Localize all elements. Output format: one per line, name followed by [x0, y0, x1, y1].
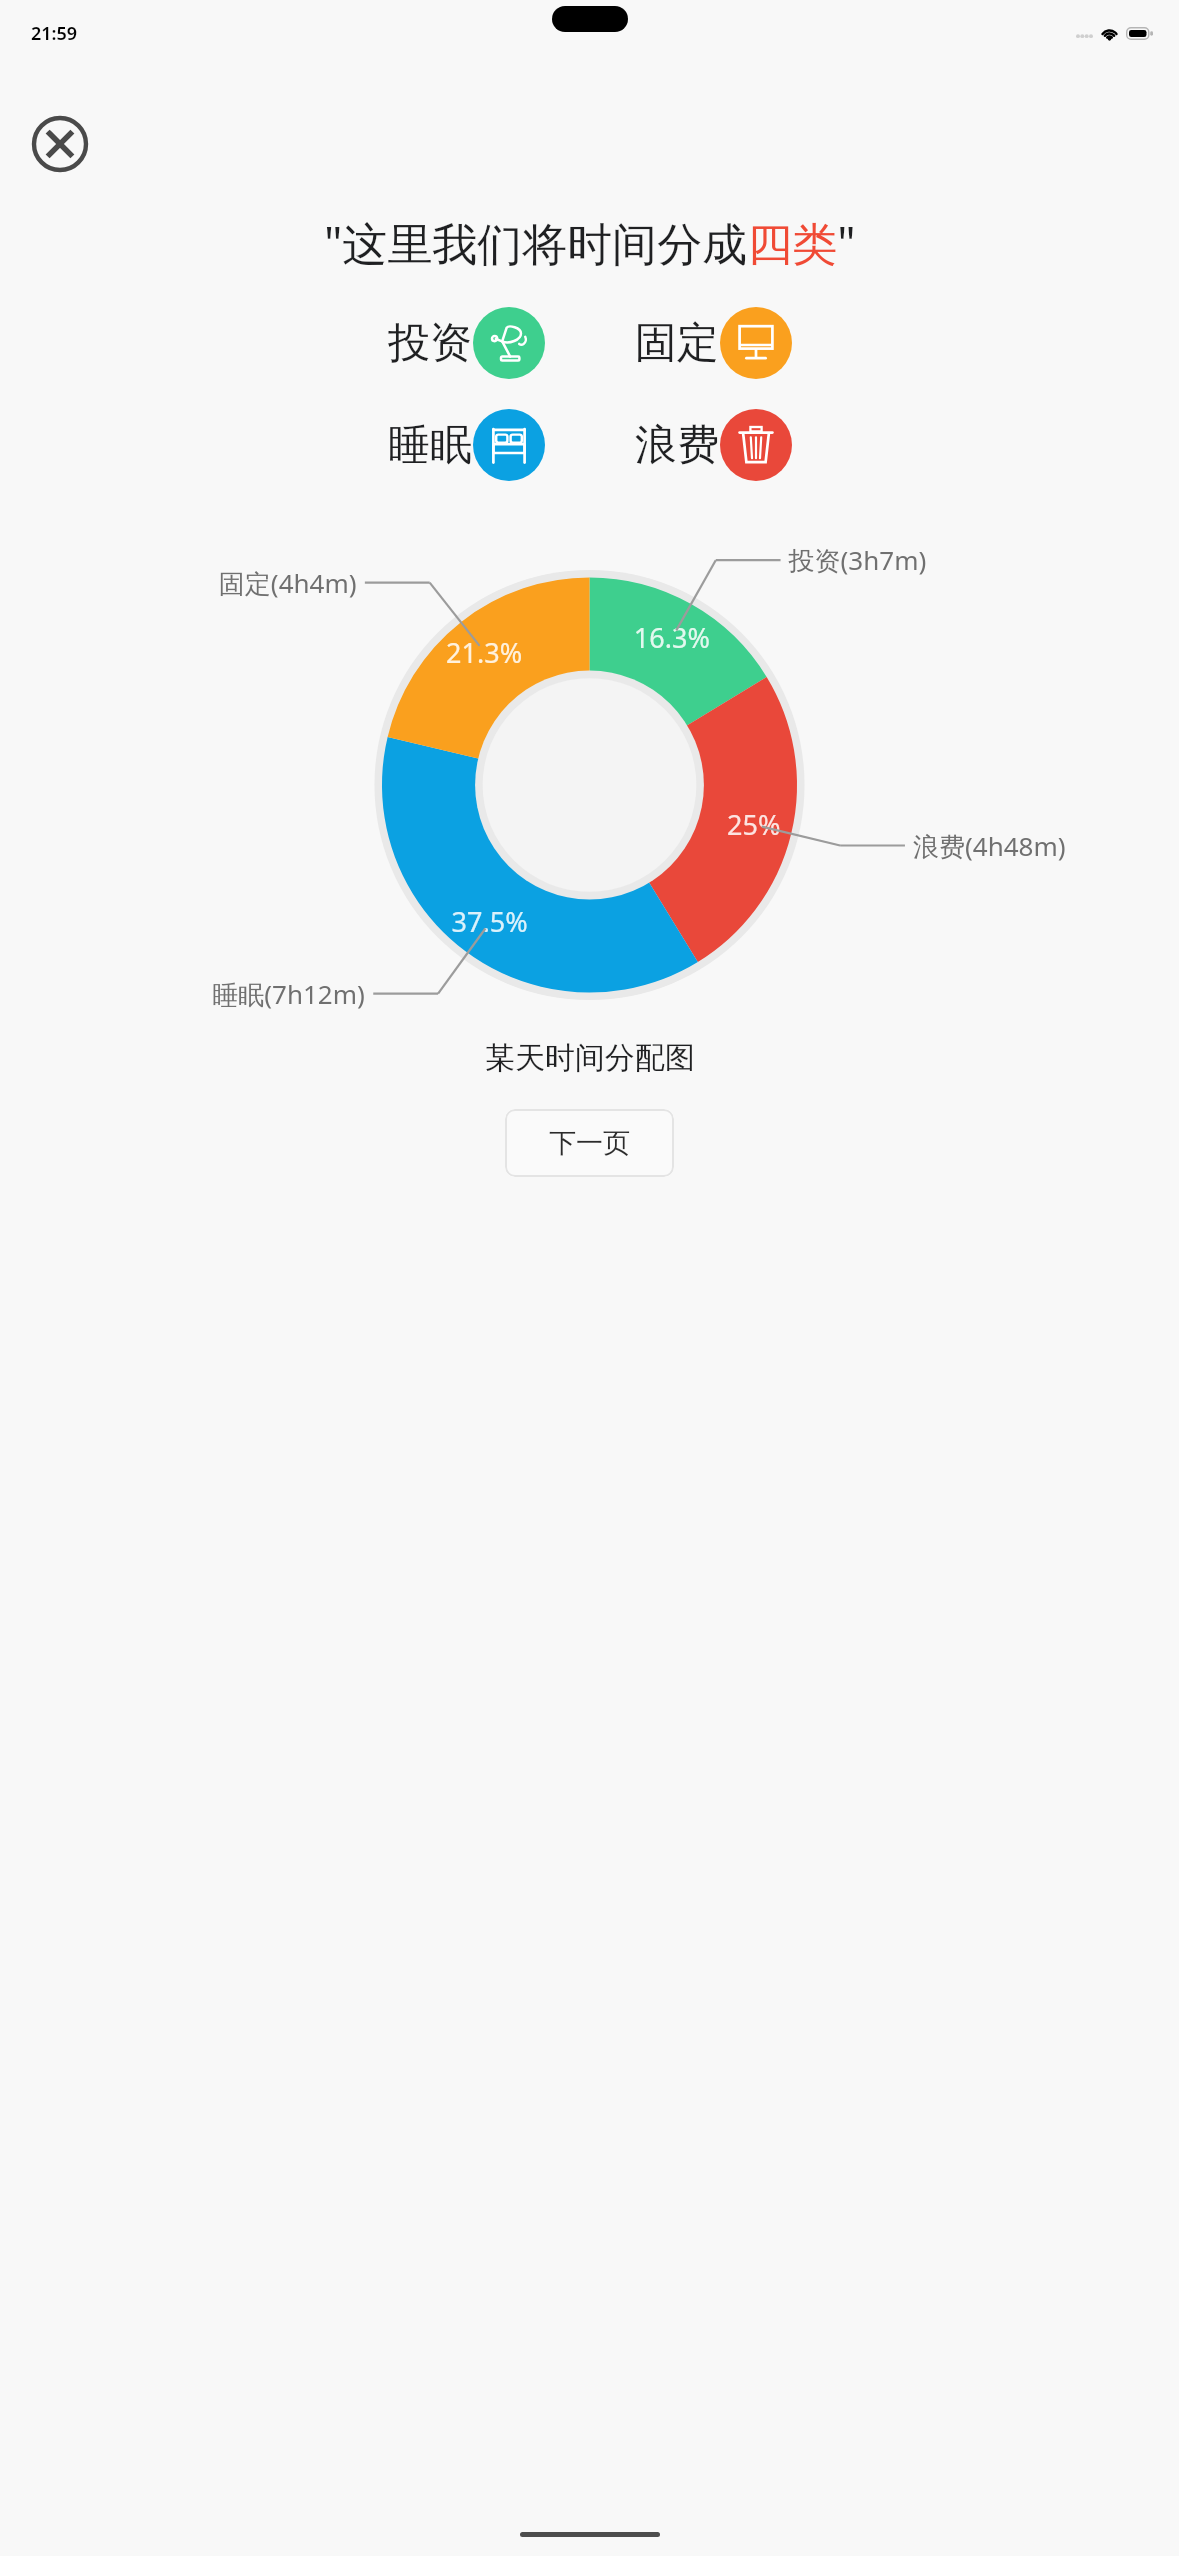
staticText: 投资 [388, 317, 472, 370]
staticText: 某天时间分配图 [485, 1039, 695, 1077]
staticText: 21:59 [31, 21, 78, 46]
button[interactable]: 浪费 [635, 405, 792, 485]
staticText: 睡眠 [388, 419, 472, 472]
button[interactable]: 下一页 [505, 1109, 674, 1177]
staticText: 下一页 [549, 1126, 630, 1160]
staticText: "这里我们将时间分成四类" [324, 212, 856, 273]
staticText: 固定 [635, 317, 719, 370]
button[interactable]: 睡眠 [388, 405, 545, 485]
button[interactable]: 关闭 [30, 114, 90, 174]
button[interactable]: 固定 [635, 303, 792, 383]
button[interactable]: 投资 [388, 303, 545, 383]
staticText: 浪费 [635, 419, 719, 472]
